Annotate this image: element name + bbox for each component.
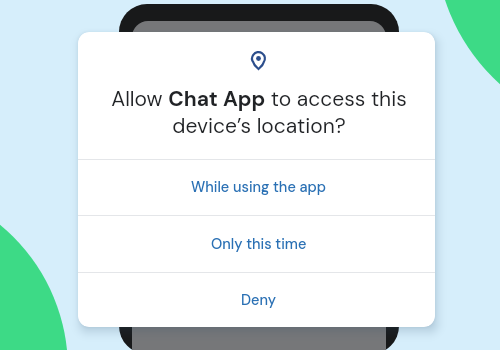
staticText: While using the app (191, 178, 326, 197)
staticText: Only this time (211, 235, 307, 254)
staticText: Deny (241, 291, 277, 310)
other: Location (251, 51, 266, 70)
staticText: Allow Chat App to access this device’s l… (99, 85, 419, 140)
button[interactable]: While using the app (78, 160, 435, 215)
button[interactable]: Only this time (78, 216, 435, 272)
button[interactable]: Deny (78, 273, 435, 327)
